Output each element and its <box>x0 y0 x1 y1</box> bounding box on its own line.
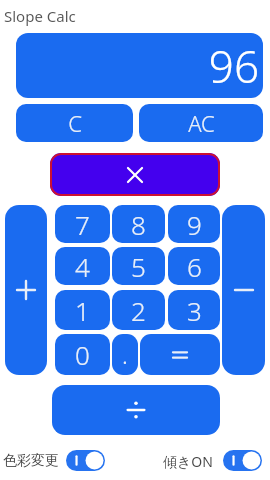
button[interactable]: 96 <box>16 33 263 98</box>
staticText: 色彩変更 <box>3 452 59 470</box>
staticText: 0 <box>75 337 90 372</box>
button[interactable]: Tilt on toggle <box>223 450 262 471</box>
button[interactable]: 0 <box>55 334 110 375</box>
button[interactable]: 2 <box>112 290 165 330</box>
button[interactable]: . <box>112 334 138 375</box>
button[interactable]: 3 <box>168 290 220 330</box>
staticText: Slope Calc <box>4 6 76 26</box>
button[interactable]: 9 <box>168 205 220 243</box>
staticText: 傾きON <box>163 452 213 471</box>
staticText: AC <box>188 108 215 138</box>
staticText: 4 <box>75 249 90 284</box>
staticText: 7 <box>75 207 90 242</box>
button[interactable]: Change colors toggle <box>66 450 105 471</box>
staticText: C <box>68 108 82 138</box>
button[interactable]: 5 <box>112 247 165 285</box>
staticText: 5 <box>131 249 146 284</box>
button[interactable]: Multiply <box>50 153 220 196</box>
button[interactable]: 6 <box>168 247 220 285</box>
button[interactable]: 7 <box>55 205 110 243</box>
staticText: 96 <box>208 36 259 96</box>
staticText: 1 <box>75 293 90 328</box>
button[interactable]: 4 <box>55 247 110 285</box>
staticText: . <box>122 338 128 371</box>
staticText: 8 <box>131 207 146 242</box>
button[interactable]: Minus <box>222 205 265 375</box>
staticText: 6 <box>187 249 202 284</box>
button[interactable]: AC <box>139 104 263 142</box>
staticText: 3 <box>187 293 202 328</box>
staticText: 2 <box>131 293 146 328</box>
button[interactable]: 1 <box>55 290 110 330</box>
button[interactable]: Plus <box>5 205 47 375</box>
button[interactable]: Divide <box>52 385 220 435</box>
button[interactable]: 8 <box>112 205 165 243</box>
staticText: 9 <box>187 207 202 242</box>
button[interactable]: C <box>16 104 133 142</box>
button[interactable]: Equals <box>140 334 220 375</box>
